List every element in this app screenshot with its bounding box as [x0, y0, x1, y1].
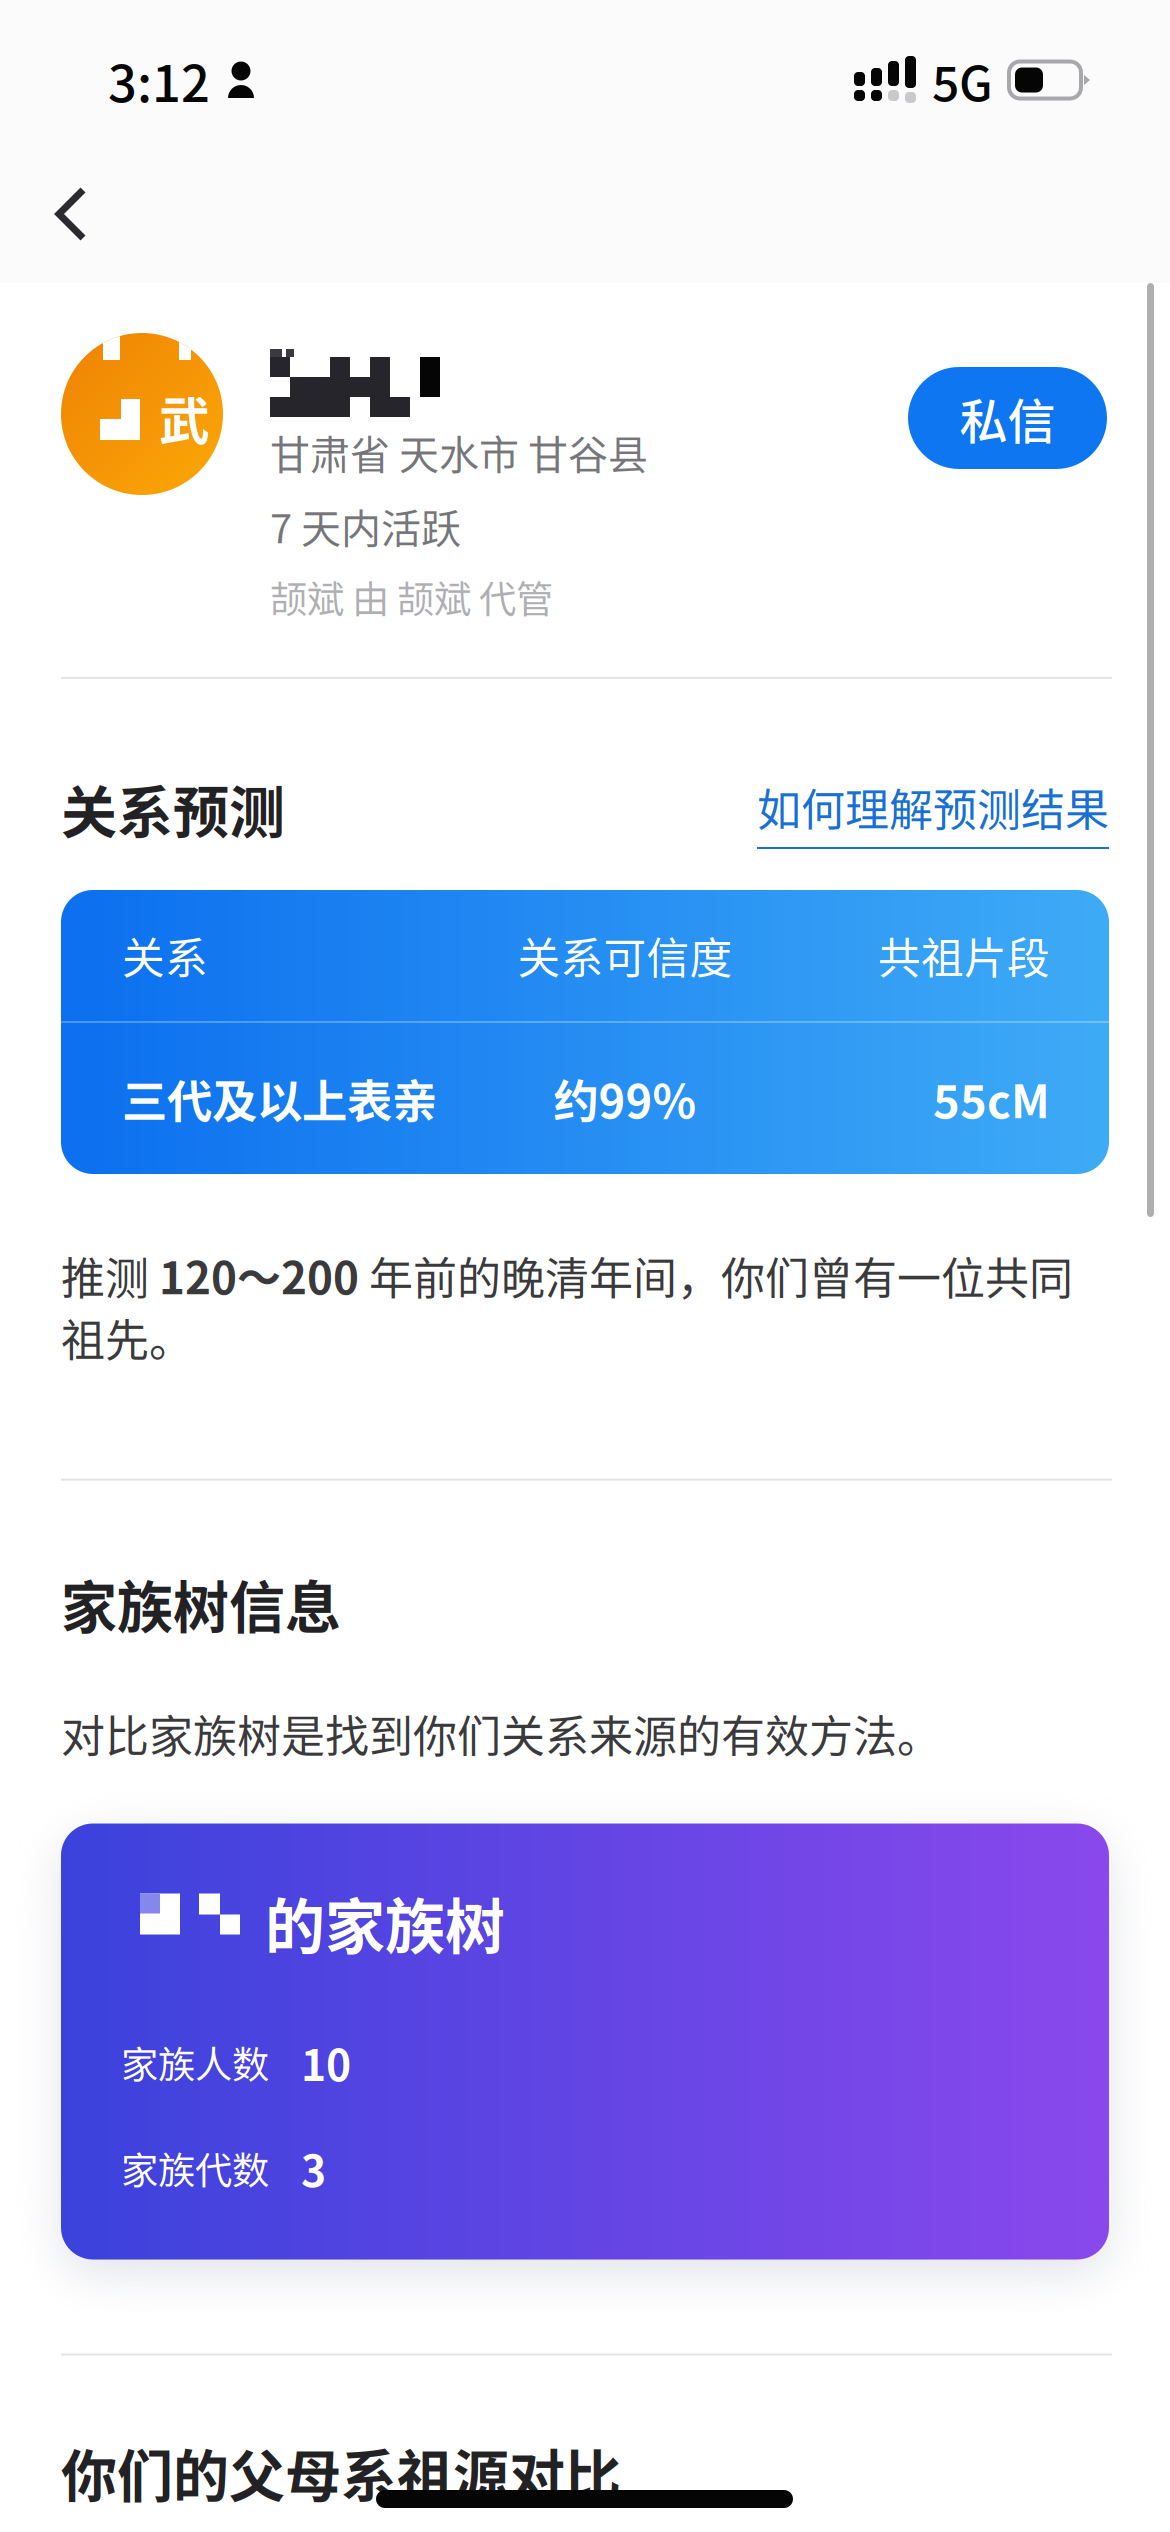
- staticText: 家族人数: [121, 2035, 269, 2089]
- staticText: 3:12: [108, 43, 210, 117]
- staticText: 颉斌 由 颉斌 代管: [270, 570, 553, 624]
- staticText: 10: [301, 2031, 351, 2093]
- staticText: 的家族树: [265, 1879, 505, 1966]
- staticText: 7 天内活跃: [270, 497, 461, 555]
- staticText: 三代及以上表亲: [122, 1066, 437, 1131]
- button[interactable]: Back: [0, 160, 122, 274]
- staticText: 关系预测: [61, 768, 285, 849]
- button[interactable]: 的家族树: [0, 1765, 1170, 2259]
- staticText: 对比家族树是找到你们关系来源的有效方法。: [61, 1702, 941, 1765]
- staticText: 甘肃省 天水市 甘谷县: [270, 423, 648, 481]
- staticText: 55cM: [933, 1066, 1050, 1131]
- staticText: 共祖片段: [878, 925, 1050, 986]
- staticText: 约99%: [553, 1066, 696, 1131]
- staticText: 武: [159, 381, 210, 454]
- staticText: 关系可信度: [517, 925, 732, 986]
- staticText: 家族代数: [121, 2141, 269, 2195]
- staticText: 推测 120～200 年前的晚清年间，你们曾有一位共同祖先。: [61, 1244, 1073, 1369]
- staticText: 关系: [122, 925, 208, 986]
- button[interactable]: 如何理解预测结果: [757, 775, 1109, 849]
- staticText: 家族树信息: [61, 1563, 341, 1644]
- staticText: 私信: [959, 383, 1055, 453]
- staticText: 你们的父母系祖源对比: [61, 2431, 621, 2513]
- staticText: 3: [301, 2137, 326, 2199]
- staticText: 如何理解预测结果: [757, 775, 1109, 839]
- button[interactable]: 私信: [908, 367, 1107, 469]
- staticText: 5G: [932, 45, 993, 115]
